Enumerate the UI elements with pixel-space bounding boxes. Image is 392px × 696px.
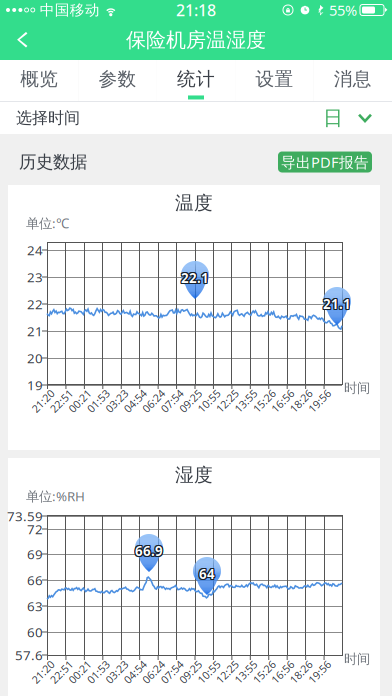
staticText: 66.9 <box>136 543 164 561</box>
staticText: 64 <box>198 564 214 582</box>
staticText: 64 <box>200 564 216 582</box>
staticText: 中国移动 <box>40 1 100 19</box>
staticText: 66.9 <box>134 543 162 561</box>
staticText: 00:21 <box>66 665 93 679</box>
staticText: 12:25 <box>214 394 241 408</box>
staticText: 19 <box>27 376 43 394</box>
staticText: 22.1 <box>182 270 210 288</box>
button[interactable]: 参数 <box>78 60 157 101</box>
button[interactable]: Back <box>0 20 44 60</box>
staticText: 22.1 <box>182 268 210 286</box>
staticText: 57.6 <box>15 646 43 664</box>
staticText: 23 <box>27 268 43 286</box>
staticText: 参数 <box>99 67 137 90</box>
staticText: 21.1 <box>324 295 352 313</box>
staticText: 22.1 <box>181 269 209 287</box>
staticText: 12:25 <box>214 665 241 679</box>
staticText: 64 <box>199 564 215 582</box>
staticText: 64 <box>199 565 215 583</box>
staticText: 21.1 <box>322 296 350 314</box>
staticText: 69 <box>27 545 43 563</box>
staticText: 概览 <box>20 67 58 90</box>
staticText: 55% <box>329 0 357 20</box>
staticText: 07:54 <box>159 394 186 408</box>
staticText: 04:54 <box>122 394 149 408</box>
staticText: 21.1 <box>324 294 352 312</box>
button[interactable]: 统计 <box>157 60 235 101</box>
button[interactable]: 导出PDF报告 <box>278 151 372 172</box>
staticText: 15:26 <box>251 665 278 679</box>
staticText: 温度 <box>175 191 213 214</box>
staticText: 64 <box>200 565 216 583</box>
staticText: 16:56 <box>269 665 296 679</box>
staticText: 19:56 <box>306 394 333 408</box>
staticText: 22 <box>27 295 43 313</box>
staticText: 66.9 <box>136 542 164 560</box>
staticText: 03:23 <box>103 394 130 408</box>
staticText: 22.1 <box>180 268 208 286</box>
staticText: 22.1 <box>181 270 209 288</box>
button[interactable]: 选择时间 <box>0 102 392 134</box>
staticText: 22:51 <box>48 665 75 679</box>
staticText: 22.1 <box>181 268 209 286</box>
staticText: 09:25 <box>177 394 204 408</box>
staticText: 21:20 <box>29 665 56 679</box>
staticText: 设置 <box>255 67 293 90</box>
staticText: 时间 <box>344 651 370 667</box>
staticText: 13:55 <box>232 394 259 408</box>
staticText: 66 <box>27 571 43 589</box>
staticText: 18:26 <box>288 394 315 408</box>
staticText: 21 <box>27 322 43 340</box>
staticText: 保险机房温湿度 <box>126 28 266 52</box>
button[interactable]: 概览 <box>0 60 78 101</box>
staticText: 21.1 <box>323 294 351 312</box>
staticText: 消息 <box>334 67 372 90</box>
staticText: 21.1 <box>322 294 350 312</box>
staticText: 66.9 <box>135 542 163 560</box>
staticText: 22:51 <box>48 394 75 408</box>
staticText: 66.9 <box>135 541 163 559</box>
staticText: 22.1 <box>180 270 208 288</box>
staticText: 64 <box>198 565 214 583</box>
button[interactable]: 消息 <box>314 60 392 101</box>
staticText: 统计 <box>177 67 215 90</box>
staticText: 10:55 <box>195 394 222 408</box>
staticText: 64 <box>200 566 216 584</box>
staticText: 06:24 <box>140 665 167 679</box>
staticText: 21.1 <box>324 296 352 314</box>
staticText: 01:53 <box>85 665 112 679</box>
staticText: 日 <box>323 106 343 130</box>
staticText: 73.59 <box>7 507 43 525</box>
staticText: 15:26 <box>251 394 278 408</box>
staticText: 21:20 <box>29 394 56 408</box>
staticText: 22.1 <box>180 269 208 287</box>
staticText: 22.1 <box>182 269 210 287</box>
staticText: 20 <box>27 349 43 367</box>
staticText: 04:54 <box>122 665 149 679</box>
staticText: 66.9 <box>134 541 162 559</box>
staticText: 60 <box>27 623 43 641</box>
staticText: 选择时间 <box>16 108 80 128</box>
staticText: 64 <box>198 566 214 584</box>
staticText: 21.1 <box>322 295 350 313</box>
staticText: 湿度 <box>175 463 213 486</box>
staticText: 66.9 <box>135 543 163 561</box>
staticText: 64 <box>199 566 215 584</box>
staticText: 03:23 <box>103 665 130 679</box>
staticText: 01:53 <box>85 394 112 408</box>
staticText: 07:54 <box>159 665 186 679</box>
staticText: 21:18 <box>176 0 216 21</box>
staticText: 21.1 <box>323 296 351 314</box>
staticText: 时间 <box>344 380 370 396</box>
staticText: 单位:%RH <box>26 487 85 505</box>
staticText: 单位:℃ <box>26 214 69 232</box>
staticText: 21.1 <box>323 295 351 313</box>
staticText: 导出PDF报告 <box>281 152 369 172</box>
button[interactable]: 设置 <box>235 60 314 101</box>
staticText: 66.9 <box>136 541 164 559</box>
staticText: 06:24 <box>140 394 167 408</box>
staticText: 历史数据 <box>19 151 87 173</box>
staticText: 63 <box>27 597 43 615</box>
staticText: 13:55 <box>232 665 259 679</box>
staticText: 00:21 <box>66 394 93 408</box>
